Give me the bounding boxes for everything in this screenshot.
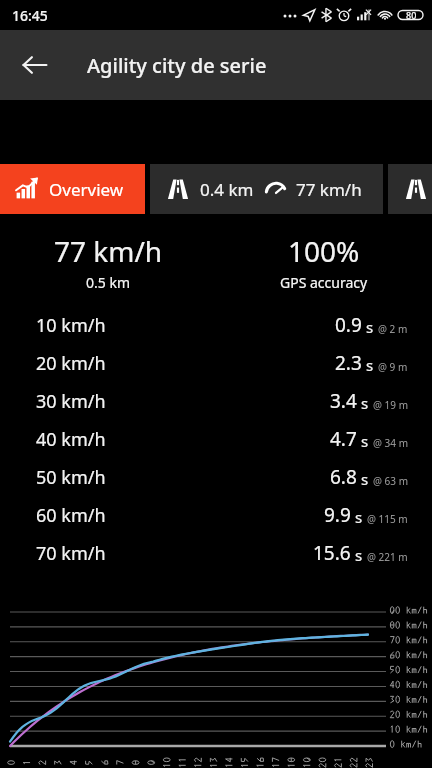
button[interactable]: 20 km/h (0, 344, 432, 382)
staticText: 16:45 (12, 6, 48, 25)
staticText: @ 2 m (378, 322, 408, 336)
staticText: @ 115 m (367, 512, 408, 526)
staticText: s (355, 545, 363, 565)
button[interactable]: 50 km/h (0, 458, 432, 496)
staticText: @ 19 m (373, 398, 408, 412)
staticText: 9.9 (324, 502, 351, 528)
staticText: 6.8 (330, 464, 357, 490)
staticText: 4.7 (330, 426, 357, 452)
staticText: s (361, 393, 369, 413)
staticText: 30 km/h (36, 389, 106, 414)
staticText: 20 km/h (36, 351, 106, 376)
staticText: s (366, 355, 374, 375)
button[interactable]: 30 km/h (0, 382, 432, 420)
staticText: s (355, 507, 363, 527)
staticText: Agility city de serie (87, 52, 267, 79)
staticText: 10 km/h (36, 313, 106, 338)
staticText: s (366, 317, 374, 337)
staticText: GPS accuracy (280, 273, 368, 292)
button[interactable]: 0.4 km (150, 164, 383, 214)
staticText: @ 34 m (373, 436, 408, 450)
button[interactable]: 60 km/h (0, 496, 432, 534)
staticText: 0.4 km (200, 178, 254, 201)
staticText: Overview (49, 178, 124, 201)
staticText: 0.5 km (86, 273, 130, 292)
staticText: 60 km/h (36, 503, 106, 528)
staticText: s (361, 469, 369, 489)
button[interactable]: Overview (0, 164, 145, 214)
staticText: 2.3 (335, 350, 362, 376)
staticText: s (361, 431, 369, 451)
staticText: @ 63 m (373, 474, 408, 488)
staticText: 100% (288, 232, 360, 270)
button[interactable]: 10 km/h (0, 306, 432, 344)
button[interactable] (388, 164, 432, 214)
staticText: @ 9 m (378, 360, 408, 374)
staticText: 70 km/h (36, 541, 106, 566)
staticText: @ 221 m (367, 550, 408, 564)
button[interactable]: 70 km/h (0, 534, 432, 572)
staticText: 77 km/h (296, 178, 362, 201)
button[interactable]: 40 km/h (0, 420, 432, 458)
staticText: 50 km/h (36, 465, 106, 490)
staticText: 40 km/h (36, 427, 106, 452)
staticText: 77 km/h (54, 232, 163, 270)
staticText: 80 (406, 9, 417, 21)
button[interactable]: Back (12, 42, 58, 88)
staticText: 3.4 (330, 388, 357, 414)
staticText: 15.6 (313, 540, 351, 566)
staticText: 0.9 (335, 312, 362, 338)
